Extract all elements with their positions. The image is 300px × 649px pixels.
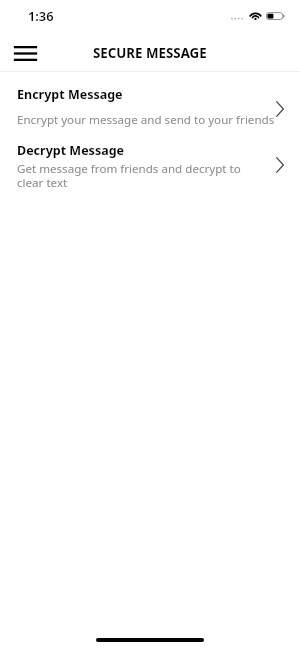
button[interactable]: Encrypt Message: [0, 82, 300, 138]
button[interactable]: Decrypt Message: [0, 138, 300, 194]
staticText: Encrypt Message: [17, 86, 123, 103]
staticText: Get message from friends and decrypt to …: [17, 161, 241, 190]
staticText: SECURE MESSAGE: [93, 44, 207, 62]
staticText: Decrypt Message: [17, 142, 125, 159]
staticText: 1:36: [28, 7, 54, 24]
button[interactable]: Open navigation menu: [7, 35, 43, 71]
staticText: Encrypt your message and send to your fr…: [17, 112, 275, 128]
